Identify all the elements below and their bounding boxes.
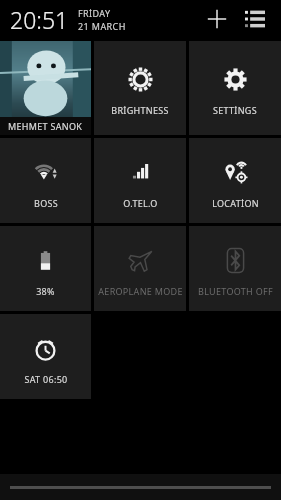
staticText: O.TEL.O	[123, 197, 158, 209]
button[interactable]: MEHMET SANOK	[0, 41, 91, 135]
button[interactable]: BLUETOOTH OFF	[189, 226, 281, 311]
button[interactable]: BRİGHTNESS	[94, 41, 186, 135]
button[interactable]: 38%	[0, 226, 91, 311]
staticText: BRİGHTNESS	[111, 104, 169, 116]
button[interactable]: AEROPLANE MODE	[94, 226, 186, 311]
button[interactable]: SAT 06:50	[0, 314, 91, 399]
button[interactable]: O.TEL.O	[94, 138, 186, 223]
staticText: 38%	[36, 285, 55, 297]
staticText: SETTİNGS	[213, 104, 257, 116]
staticText: 21 MARCH	[78, 20, 126, 32]
staticText: BLUETOOTH OFF	[198, 285, 273, 297]
staticText: SAT 06:50	[24, 373, 68, 385]
staticText: BOSS	[34, 197, 58, 209]
staticText: 20:51	[10, 4, 69, 35]
staticText: LOCATİON	[212, 197, 259, 209]
button[interactable]: LOCATİON	[189, 138, 281, 223]
button[interactable]: BOSS	[0, 138, 91, 223]
button[interactable]: Add	[199, 1, 235, 37]
staticText: MEHMET SANOK	[8, 120, 83, 132]
staticText: AEROPLANE MODE	[98, 285, 183, 297]
staticText: FRİDAY	[78, 7, 111, 19]
button[interactable]: List	[237, 1, 273, 37]
button[interactable]: SETTİNGS	[189, 41, 281, 135]
